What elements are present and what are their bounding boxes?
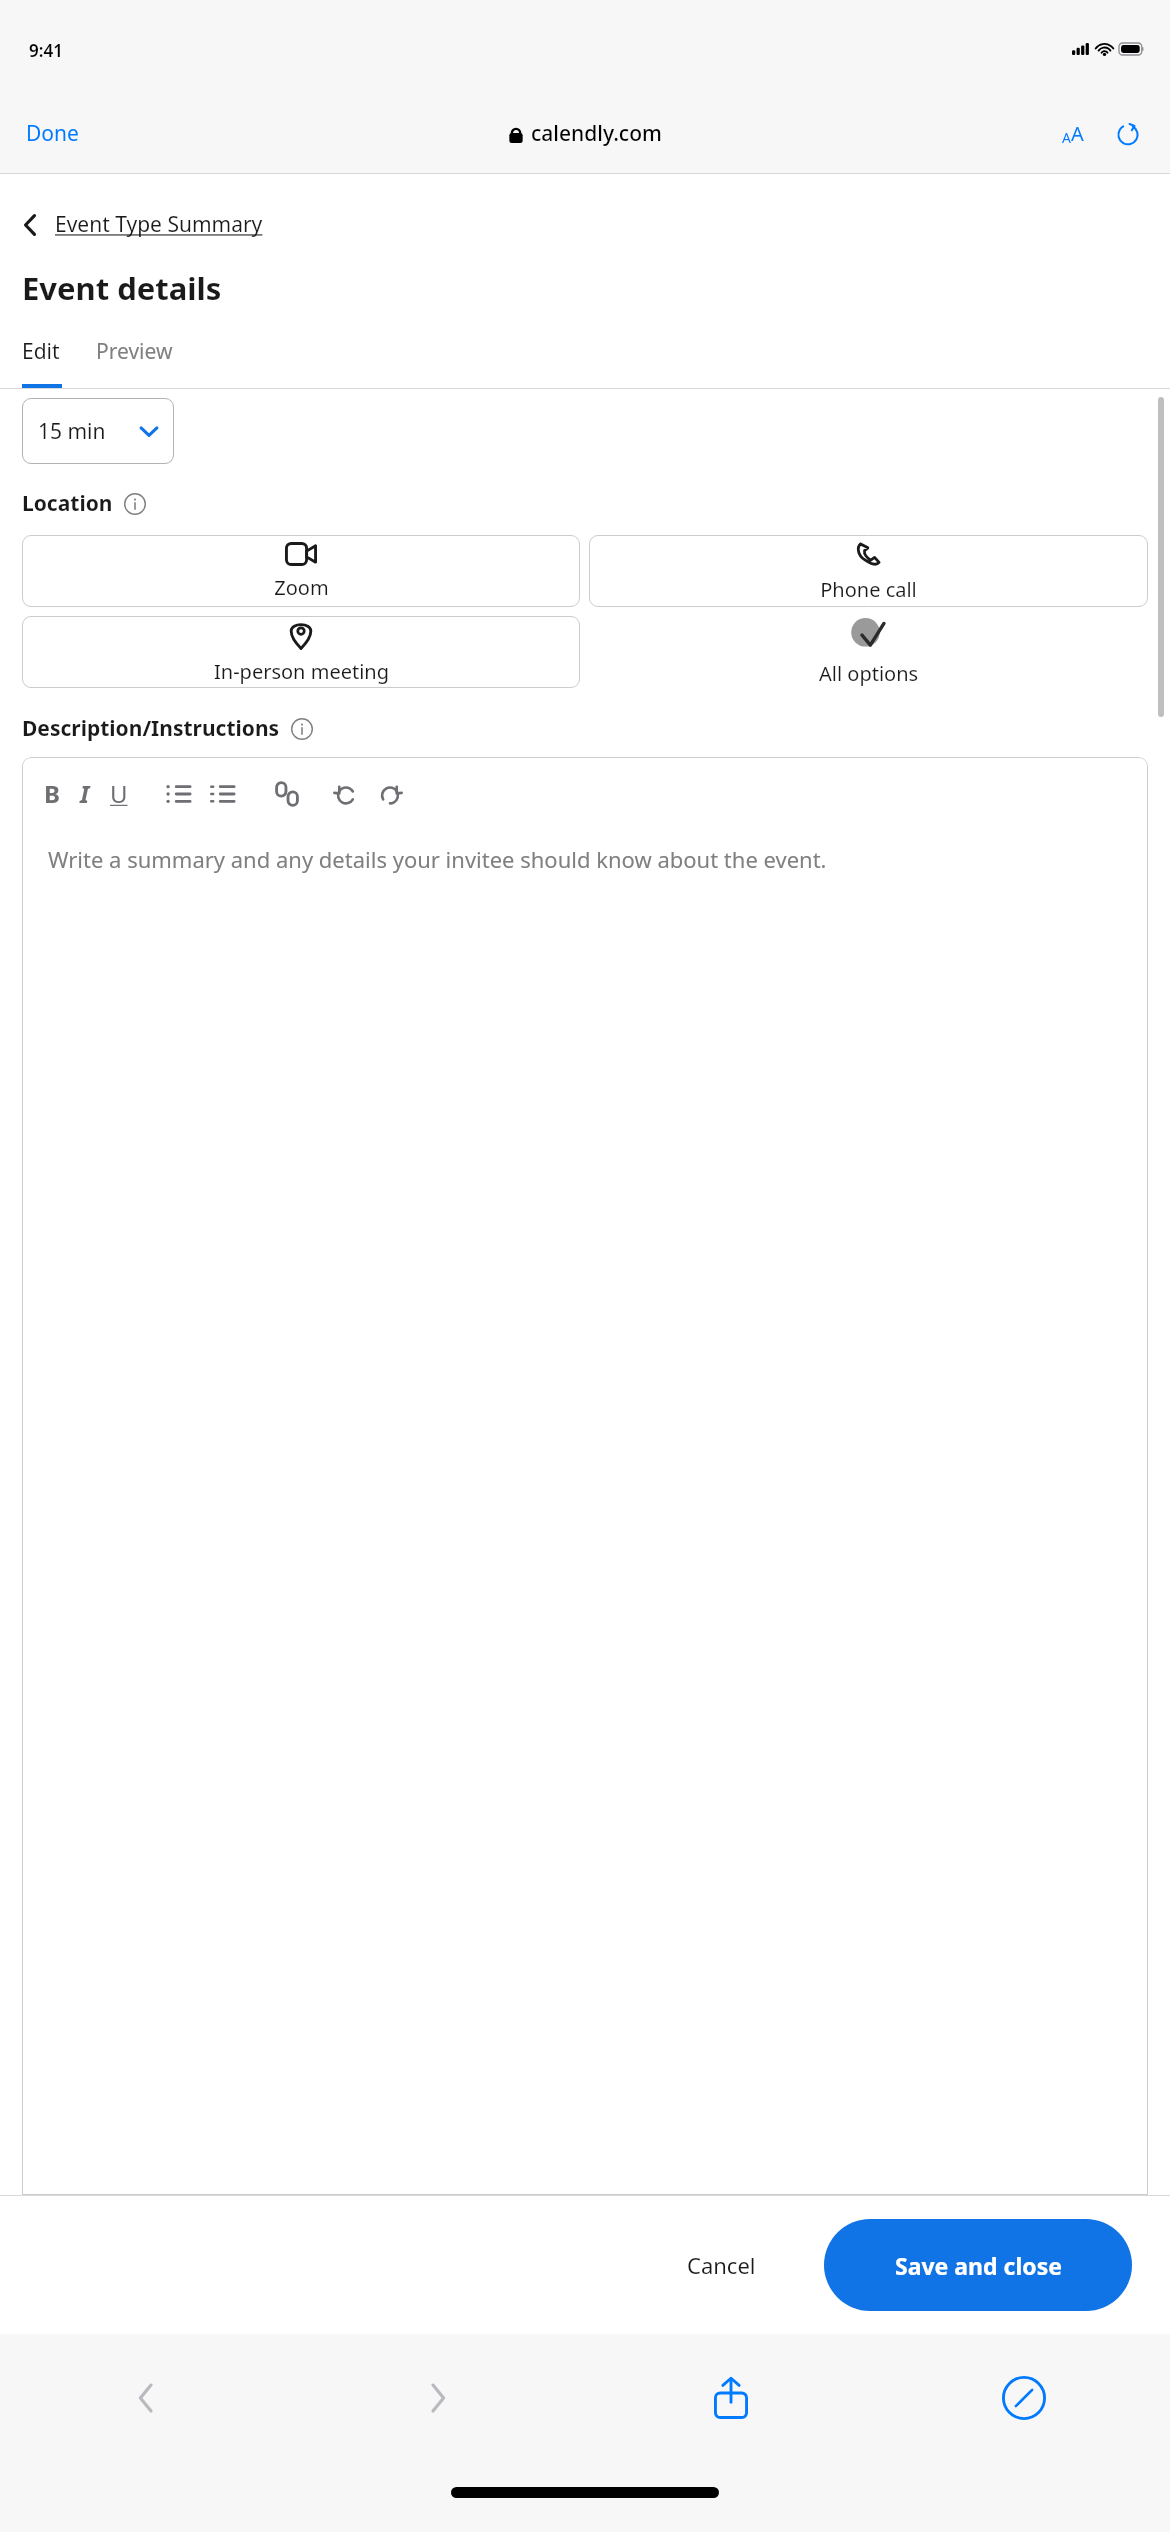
button[interactable]: More info	[291, 718, 313, 740]
button[interactable]: Phone call	[589, 535, 1148, 607]
staticText: 9:41	[29, 39, 63, 62]
staticText: I	[80, 777, 90, 810]
button[interactable]: Bulleted list	[166, 783, 192, 805]
staticText: 15 min	[38, 417, 106, 446]
staticText: Save and close	[895, 2250, 1062, 2281]
staticText: A	[1062, 128, 1071, 147]
staticText: B	[44, 777, 60, 810]
staticText: All options	[819, 660, 919, 687]
staticText: U	[110, 777, 128, 810]
staticText: Phone call	[820, 576, 917, 603]
button[interactable]: Text size	[1052, 110, 1094, 157]
button[interactable]: Bold	[44, 777, 60, 810]
staticText: Done	[26, 119, 79, 148]
button[interactable]: Insert link	[274, 781, 300, 807]
button[interactable]: More info	[124, 493, 146, 515]
button[interactable]: Preview	[82, 333, 195, 384]
button[interactable]: Zoom	[22, 535, 580, 607]
button[interactable]: All options	[589, 616, 1148, 688]
button[interactable]: Forward	[292, 2334, 584, 2462]
button[interactable]: Back	[0, 2334, 292, 2462]
staticText: In-person meeting	[214, 658, 389, 685]
button[interactable]: Underline	[110, 777, 128, 810]
staticText: Write a summary and any details your inv…	[48, 844, 827, 874]
button[interactable]: Tabs	[877, 2334, 1170, 2462]
button[interactable]: Redo	[378, 782, 402, 806]
staticText: Location	[22, 489, 113, 518]
staticText: Event details	[22, 267, 222, 309]
staticText: Edit	[22, 337, 60, 366]
button[interactable]: 15 min	[22, 398, 174, 464]
button[interactable]: In-person meeting	[22, 616, 580, 688]
button[interactable]: Done	[0, 111, 91, 156]
button[interactable]: Bold	[22, 757, 1148, 2195]
button[interactable]: Numbered list	[210, 783, 236, 805]
staticText: calendly.com	[531, 119, 662, 148]
button[interactable]: Save and close	[824, 2219, 1132, 2311]
button[interactable]: Share	[584, 2334, 877, 2462]
staticText: Cancel	[687, 2250, 756, 2280]
staticText: Zoom	[274, 574, 329, 601]
button[interactable]: Edit	[0, 333, 82, 384]
staticText: A	[1071, 120, 1084, 147]
staticText: Preview	[96, 337, 173, 366]
button[interactable]: Reload	[1108, 114, 1148, 154]
button[interactable]: Cancel	[661, 2232, 782, 2298]
button[interactable]: Undo	[334, 782, 358, 806]
button[interactable]: Event Type Summary	[0, 204, 283, 245]
staticText: Description/Instructions	[22, 714, 280, 743]
button[interactable]: calendly.com	[499, 113, 672, 154]
staticText: Event Type Summary	[55, 210, 263, 239]
button[interactable]: Italic	[80, 777, 90, 810]
